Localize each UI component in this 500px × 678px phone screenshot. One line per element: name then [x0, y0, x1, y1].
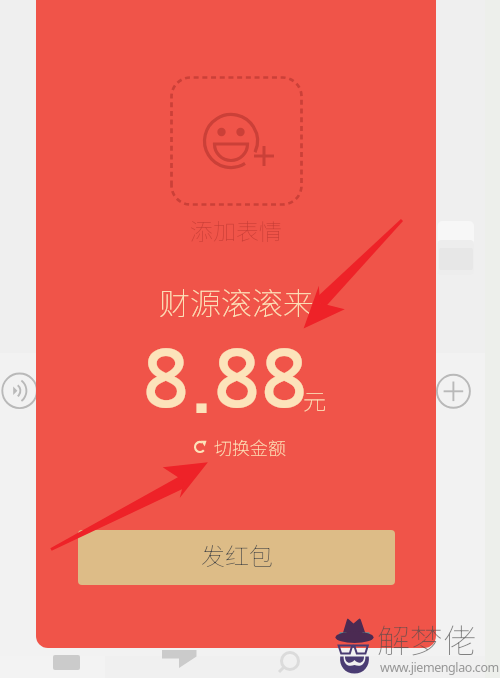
staticText: www.jiemenglao.com: [380, 659, 499, 676]
staticText: 财源滚滚来: [159, 279, 314, 324]
staticText: 发红包: [201, 537, 273, 572]
staticText: 8.88: [142, 342, 308, 427]
staticText: 切换金额: [214, 434, 286, 460]
staticText: 元: [303, 383, 326, 416]
staticText: 解梦佬: [377, 615, 476, 663]
button[interactable]: 添加表情: [170, 76, 303, 206]
staticText: 添加表情: [190, 213, 282, 246]
button[interactable]: 发红包: [78, 530, 395, 585]
button[interactable]: 切换金额: [192, 434, 286, 460]
